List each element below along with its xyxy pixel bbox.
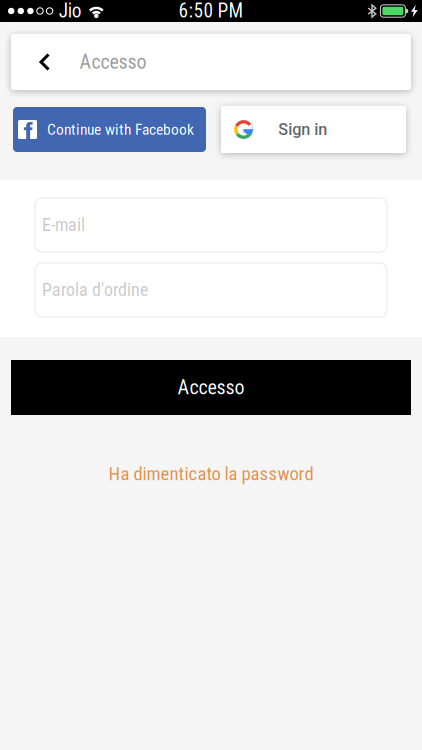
- button[interactable]: Back: [11, 34, 411, 90]
- staticText: E-mail: [42, 214, 85, 235]
- button[interactable]: Ha dimenticato la password: [94, 455, 327, 493]
- staticText: Accesso: [79, 50, 146, 74]
- staticText: Sign in: [278, 120, 327, 139]
- button[interactable]: Accesso: [11, 360, 411, 415]
- staticText: Accesso: [177, 376, 244, 399]
- staticText: 6:50 PM: [178, 0, 243, 22]
- staticText: Ha dimenticato la password: [108, 463, 313, 485]
- button[interactable]: Continue with Facebook: [13, 107, 206, 152]
- button[interactable]: Sign in: [221, 106, 406, 153]
- button[interactable]: E-mail: [35, 198, 387, 252]
- staticText: Continue with Facebook: [47, 120, 194, 138]
- staticText: Parola d'ordine: [42, 279, 148, 300]
- staticText: Jio: [59, 0, 82, 22]
- button[interactable]: Parola d'ordine: [35, 263, 387, 317]
